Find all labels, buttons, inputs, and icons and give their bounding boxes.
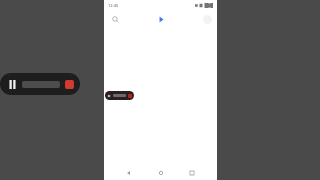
button[interactable]	[105, 91, 134, 100]
button[interactable]: Pause	[0, 73, 80, 95]
button[interactable]: Pause	[6, 78, 18, 90]
button[interactable]: Search	[109, 13, 121, 25]
staticText: 12:45	[108, 3, 119, 8]
button[interactable]: Home	[155, 167, 167, 179]
button[interactable]: Account	[203, 15, 212, 24]
button[interactable]: Recents	[186, 167, 198, 179]
button[interactable]: Stop	[65, 80, 74, 89]
button[interactable]: Play	[155, 13, 167, 25]
button[interactable]: Back	[123, 167, 135, 179]
